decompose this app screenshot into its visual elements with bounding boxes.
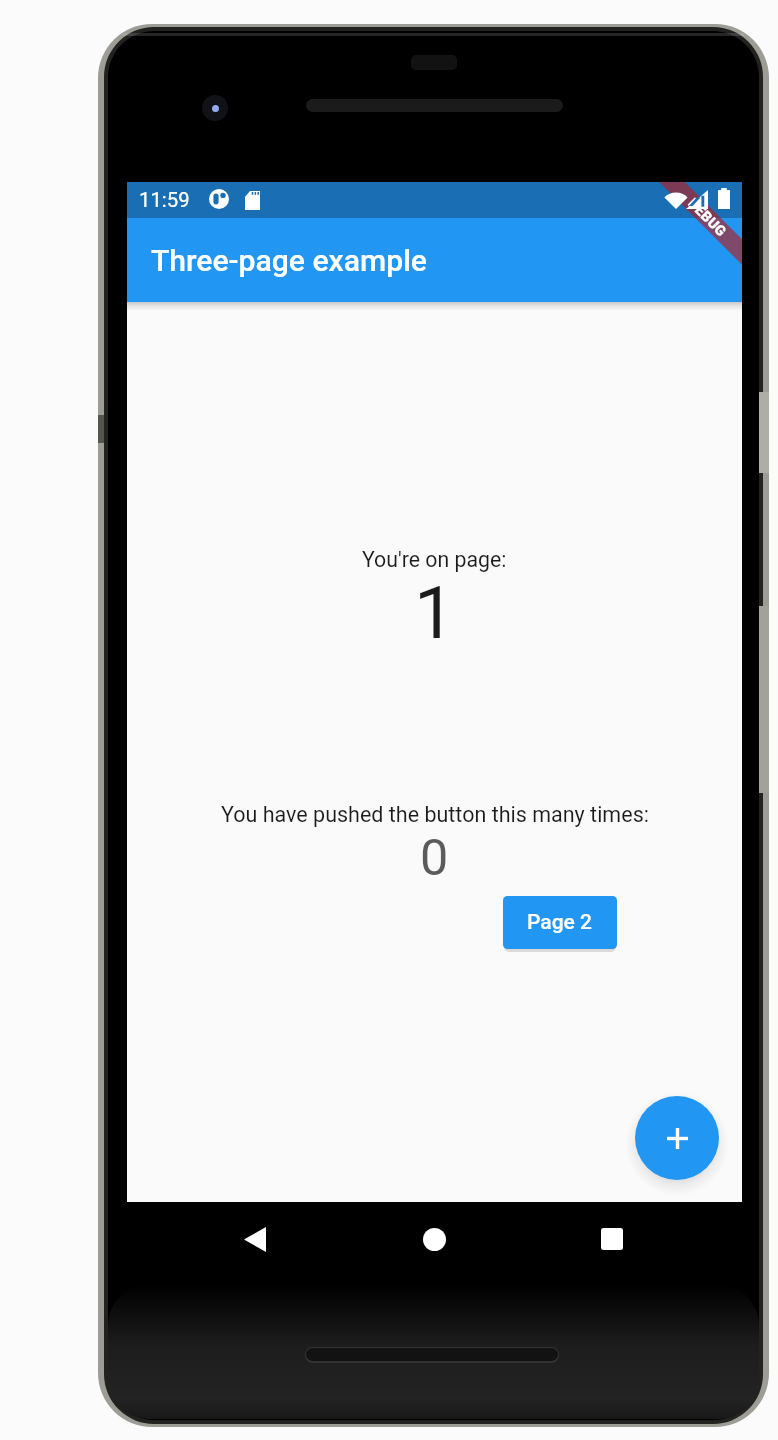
staticText: 1	[414, 571, 455, 656]
staticText: 11:59	[139, 188, 190, 212]
staticText: You're on page:	[362, 547, 507, 572]
button[interactable]: Add	[635, 1096, 719, 1180]
staticText: You have pushed the button this many tim…	[221, 802, 649, 827]
staticText: 0	[420, 828, 449, 887]
staticText: Page 2	[527, 910, 593, 935]
button[interactable]: Page 2	[503, 896, 617, 949]
button[interactable]: Home	[389, 1202, 479, 1276]
button[interactable]: Back	[210, 1202, 300, 1276]
staticText: DEBUG	[684, 195, 730, 240]
staticText: Three-page example	[151, 243, 428, 278]
button[interactable]: Recent apps	[567, 1202, 657, 1276]
